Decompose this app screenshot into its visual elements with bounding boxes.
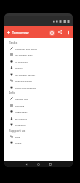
button[interactable]: Add: [4, 28, 12, 36]
staticText: Planting: [15, 104, 25, 107]
staticText: AI assistant: [15, 60, 28, 63]
button[interactable]: Calendar and notes: [4, 45, 73, 51]
button[interactable]: AI assistant: [4, 58, 73, 64]
staticText: Pests and diseases: [15, 86, 37, 89]
staticText: Tomorrow: [12, 30, 29, 35]
staticText: Rate: [15, 135, 21, 138]
staticText: Seed exchange: [15, 79, 32, 82]
staticText: By months: [15, 117, 28, 120]
button[interactable]: By months: [4, 115, 73, 121]
button[interactable]: Rate: [4, 133, 73, 139]
button[interactable]: Problems: [4, 121, 73, 127]
button[interactable]: My garden plan: [4, 51, 73, 57]
button[interactable]: Share: [4, 139, 73, 145]
staticText: Problems: [15, 123, 26, 126]
staticText: Sensor: [15, 66, 23, 69]
button[interactable]: Vegetables: [4, 108, 73, 114]
staticText: My garden sensor: [15, 73, 36, 76]
button[interactable]: My garden sensor: [4, 71, 73, 77]
staticText: Support us: [9, 129, 26, 133]
staticText: Share: [15, 141, 22, 144]
button[interactable]: Sensor: [4, 64, 73, 70]
button[interactable]: Info: [47, 28, 56, 37]
staticText: My garden plan: [15, 53, 33, 56]
staticText: Garden tips: [15, 97, 29, 100]
other: Recents: [49, 163, 52, 166]
button[interactable]: More options: [64, 28, 72, 36]
staticText: Tasks: [9, 41, 18, 45]
button[interactable]: Pests and diseases: [4, 84, 73, 90]
staticText: Info: [9, 91, 16, 95]
staticText: Calendar and notes: [15, 47, 37, 50]
button[interactable]: Seed exchange: [4, 77, 73, 83]
button[interactable]: Planting: [4, 102, 73, 108]
staticText: Vegetables: [15, 110, 28, 113]
other: Back: [25, 163, 28, 166]
button[interactable]: Garden tips: [4, 95, 73, 101]
other: Home: [37, 163, 40, 166]
button[interactable]: Share: [56, 28, 64, 36]
